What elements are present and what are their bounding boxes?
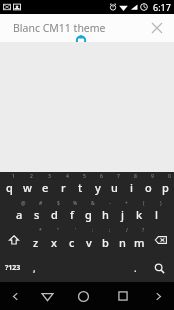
staticText: i	[130, 180, 133, 195]
staticText: z	[33, 235, 39, 250]
staticText: 7	[117, 173, 120, 180]
staticText: *	[39, 227, 42, 234]
staticText: ,	[33, 261, 36, 275]
button[interactable]: #	[28, 199, 46, 226]
staticText: w	[23, 180, 32, 195]
staticText: q	[6, 180, 13, 195]
staticText: /	[126, 227, 128, 234]
staticText: &	[91, 200, 95, 207]
staticText: g	[85, 207, 92, 222]
button[interactable]: 4	[54, 172, 72, 199]
button[interactable]: ?	[131, 226, 148, 254]
button[interactable]: &	[80, 199, 97, 226]
staticText: 1	[12, 173, 15, 180]
staticText: l	[155, 207, 158, 222]
staticText: -	[109, 200, 111, 207]
staticText: )	[160, 200, 162, 207]
staticText: 4	[66, 173, 69, 180]
button[interactable]: :	[80, 226, 97, 254]
staticText: r	[61, 180, 66, 195]
button[interactable]: Previous	[0, 282, 31, 310]
staticText: y	[95, 180, 101, 195]
button[interactable]: -	[97, 199, 114, 226]
button[interactable]: (	[131, 199, 148, 226]
staticText: e	[42, 180, 49, 195]
staticText: 3	[48, 173, 51, 180]
button[interactable]: Home	[63, 282, 104, 310]
staticText: j	[121, 207, 124, 222]
staticText: o	[145, 180, 152, 195]
button[interactable]: Shift	[0, 226, 27, 254]
button[interactable]: /	[114, 226, 131, 254]
button[interactable]: 7	[106, 172, 123, 199]
staticText: .	[134, 261, 137, 275]
button[interactable]: ?123	[0, 254, 26, 282]
staticText: u	[111, 180, 118, 195]
staticText: 8	[134, 173, 137, 180]
button[interactable]: Period	[127, 254, 144, 282]
staticText: 5	[83, 173, 86, 180]
staticText: :	[92, 227, 94, 234]
button[interactable]: Clear search	[148, 19, 166, 37]
staticText: ?123	[5, 263, 21, 273]
staticText: b	[102, 235, 109, 250]
button[interactable]: "	[45, 226, 63, 254]
button[interactable]: Next	[142, 282, 174, 310]
staticText: a	[16, 207, 23, 222]
staticText: d	[51, 207, 58, 222]
button[interactable]: *	[27, 226, 45, 254]
staticText: n	[119, 235, 126, 250]
staticText: 2	[30, 173, 33, 180]
button[interactable]: 6	[89, 172, 106, 199]
button[interactable]: Hide keyboard	[31, 282, 63, 310]
staticText: f	[70, 207, 74, 222]
staticText: c	[69, 235, 75, 250]
button[interactable]: 2	[18, 172, 36, 199]
staticText: #	[39, 200, 43, 207]
button[interactable]: 3	[36, 172, 54, 199]
staticText: k	[136, 207, 143, 222]
button[interactable]: 8	[123, 172, 140, 199]
staticText: Blanc CM11 theme	[13, 21, 106, 35]
staticText: "	[57, 227, 60, 234]
staticText: t	[78, 180, 83, 195]
button[interactable]: 9	[140, 172, 157, 199]
staticText: @	[21, 200, 26, 207]
button[interactable]: Search	[144, 254, 174, 282]
button[interactable]: $	[46, 199, 63, 226]
button[interactable]: 0	[157, 172, 174, 199]
button[interactable]: Blanc CM11 theme	[13, 14, 106, 42]
staticText: %	[73, 200, 78, 207]
button[interactable]: %	[63, 199, 80, 226]
staticText: 6:17	[153, 1, 171, 13]
button[interactable]: Backspace	[148, 226, 174, 254]
button[interactable]: Recents	[104, 282, 142, 310]
staticText: '	[75, 227, 77, 234]
button[interactable]: Comma	[26, 254, 43, 282]
staticText: 0	[168, 173, 171, 180]
staticText: (	[143, 200, 145, 207]
staticText: p	[162, 180, 169, 195]
staticText: 9	[151, 173, 154, 180]
button[interactable]: +	[114, 199, 131, 226]
button[interactable]: @	[10, 199, 28, 226]
staticText: x	[51, 235, 57, 250]
staticText: +	[125, 200, 128, 207]
button[interactable]: )	[148, 199, 165, 226]
staticText: 6	[100, 173, 103, 180]
staticText: ?	[142, 227, 145, 234]
staticText: m	[134, 235, 145, 250]
button[interactable]: 5	[72, 172, 89, 199]
button[interactable]: 1	[0, 172, 18, 199]
staticText: h	[102, 207, 109, 222]
button[interactable]: '	[63, 226, 80, 254]
staticText: v	[86, 235, 92, 250]
staticText: $	[57, 200, 60, 207]
staticText: s	[34, 207, 40, 222]
staticText: ;	[109, 227, 111, 234]
button[interactable]: ;	[97, 226, 114, 254]
